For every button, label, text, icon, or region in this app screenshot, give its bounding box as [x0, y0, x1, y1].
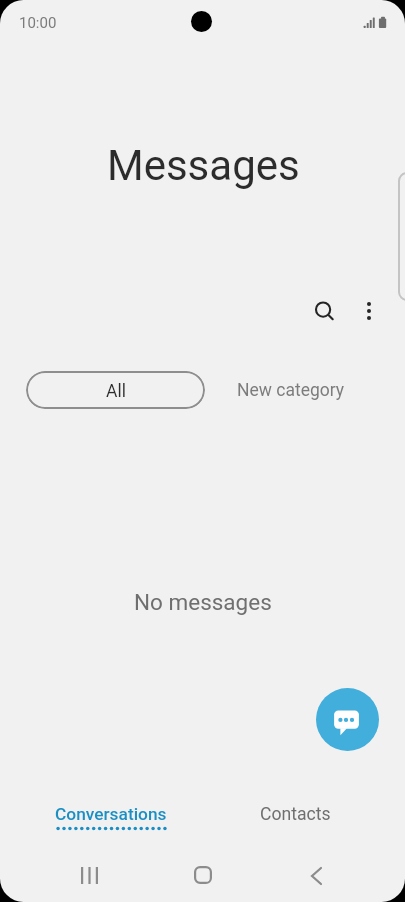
- staticText: New category: [237, 380, 345, 401]
- button[interactable]: Search: [303, 290, 347, 334]
- button[interactable]: All: [26, 371, 205, 409]
- button[interactable]: New category: [222, 371, 360, 409]
- staticText: No messages: [134, 589, 272, 615]
- staticText: All: [106, 381, 126, 402]
- button[interactable]: Contacts: [220, 796, 370, 842]
- button[interactable]: Back: [288, 853, 344, 899]
- staticText: Messages: [107, 141, 300, 190]
- staticText: Conversations: [55, 804, 167, 824]
- button[interactable]: More options: [347, 289, 391, 333]
- staticText: Contacts: [260, 804, 331, 825]
- button[interactable]: Home: [175, 852, 231, 898]
- button[interactable]: Conversations: [36, 796, 186, 842]
- button[interactable]: Recents: [61, 852, 117, 898]
- staticText: 10:00: [19, 14, 57, 32]
- button[interactable]: New conversation: [316, 688, 379, 751]
